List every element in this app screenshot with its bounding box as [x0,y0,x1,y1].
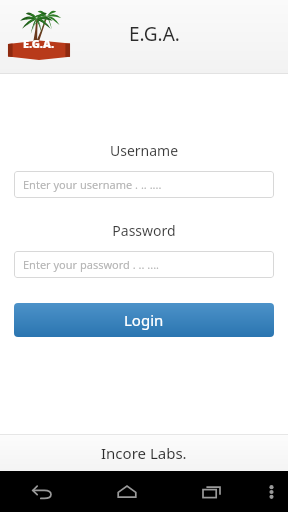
button[interactable]: Enter your username . .. .... [14,171,274,198]
staticText: Enter your username . .. .... [23,177,162,192]
staticText: Login [124,310,164,330]
staticText: E.G.A. [23,36,55,51]
staticText: Username [0,141,288,160]
button[interactable]: E.G.A. logo [6,2,72,68]
button[interactable]: Enter your password . .. .... [14,251,274,278]
button[interactable]: Recent apps [169,471,254,512]
button[interactable]: Back [0,471,84,512]
button[interactable]: More options [254,471,288,512]
staticText: Password [0,221,288,240]
button[interactable]: Home [84,471,169,512]
staticText: E.G.A. [129,21,180,47]
button[interactable]: Login [14,303,274,337]
button[interactable]: Incore Labs. [0,434,288,471]
staticText: Enter your password . .. .... [23,257,160,272]
staticText: Incore Labs. [101,443,187,463]
